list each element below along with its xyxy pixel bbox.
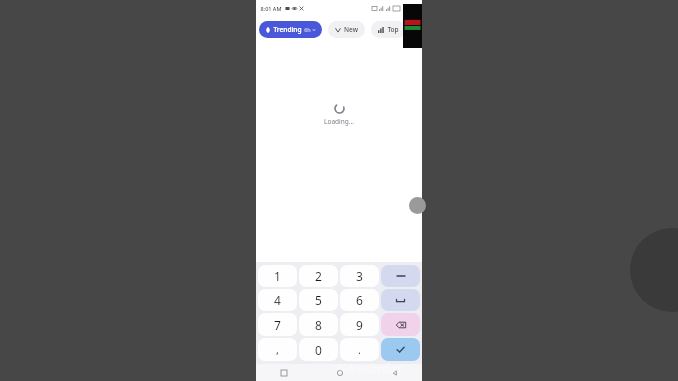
button[interactable]: 4 [258, 289, 297, 311]
button[interactable]: 2 [299, 265, 338, 287]
staticText: Top [387, 25, 399, 34]
staticText: 5 [315, 292, 322, 308]
staticText: , [276, 342, 279, 357]
button[interactable]: 6 [340, 289, 379, 311]
button[interactable]: Space [381, 289, 420, 311]
staticText: New [344, 25, 358, 34]
button[interactable]: Back [367, 364, 422, 381]
staticText: 3 [356, 268, 363, 284]
button[interactable]: 3 [340, 265, 379, 287]
button[interactable]: Home [312, 364, 367, 381]
staticText: 1 [274, 268, 281, 284]
button[interactable]: Backspace [381, 313, 420, 336]
staticText: Loading... [324, 117, 354, 126]
staticText: 8:01 AM [260, 5, 282, 12]
staticText: . [358, 342, 361, 357]
button[interactable]: , [258, 338, 297, 361]
button[interactable]: 7 [258, 313, 297, 336]
staticText: 2 [315, 268, 322, 284]
button[interactable]: New [328, 21, 365, 38]
button[interactable]: 0 [299, 338, 338, 361]
button[interactable]: Video preview [403, 4, 422, 48]
staticText: 4 [274, 292, 281, 308]
button[interactable]: Floating assistant [409, 197, 426, 214]
staticText: 8 [315, 317, 322, 333]
button[interactable]: 9 [340, 313, 379, 336]
staticText: 9 [356, 317, 363, 333]
button[interactable]: 1 [258, 265, 297, 287]
staticText: 6h [304, 26, 311, 33]
staticText: 0 [315, 342, 322, 358]
button[interactable]: Trending [259, 21, 322, 38]
button[interactable]: Recents [256, 364, 312, 381]
button[interactable]: Enter [381, 338, 420, 361]
staticText: %Recorder [336, 359, 403, 377]
staticText: 7 [274, 317, 281, 333]
button[interactable]: . [340, 338, 379, 361]
staticText: Trending [273, 25, 302, 34]
button[interactable]: 8 [299, 313, 338, 336]
button[interactable]: 5 [299, 289, 338, 311]
staticText: 6 [356, 292, 363, 308]
button[interactable]: Top [371, 21, 406, 38]
button[interactable]: Minus [381, 265, 420, 287]
